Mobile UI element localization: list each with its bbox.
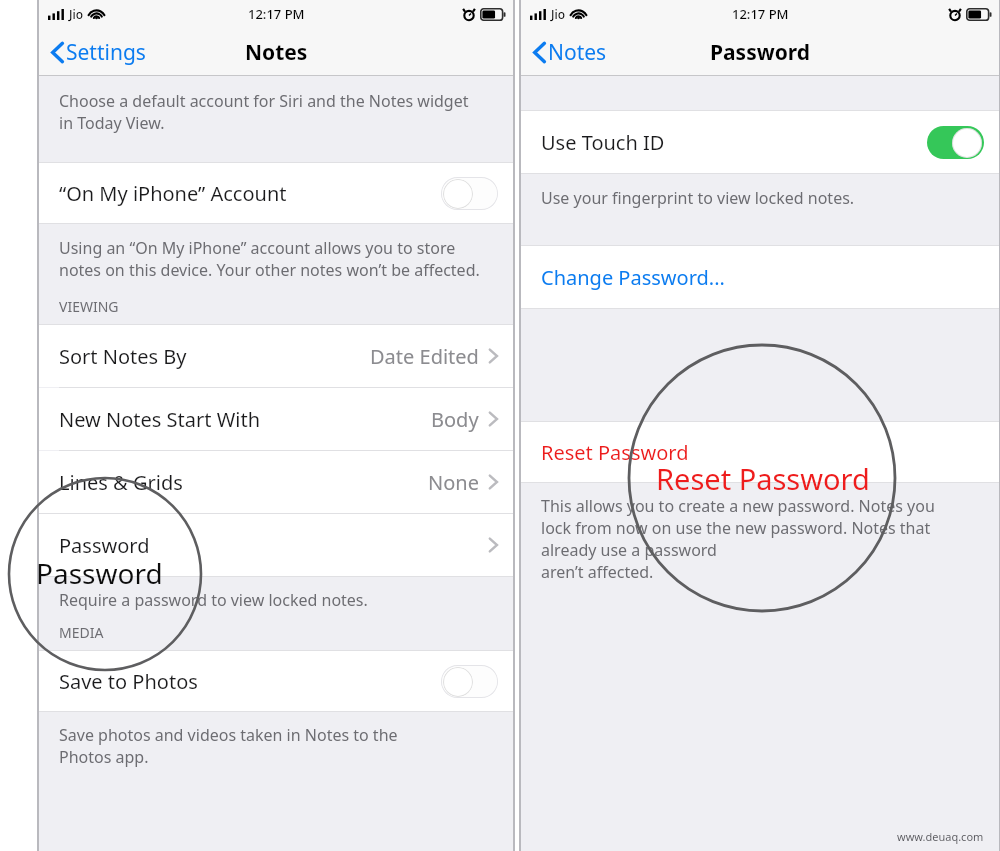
staticText: New Notes Start With <box>59 406 261 433</box>
staticText: Password <box>59 532 150 559</box>
staticText: Jio <box>551 6 566 22</box>
staticText: www.deuaq.com <box>897 829 984 844</box>
staticText: Use Touch ID <box>541 129 665 156</box>
staticText: Sort Notes By <box>59 343 187 370</box>
button[interactable]: “On My iPhone” Account <box>39 163 513 223</box>
button[interactable]: Use Touch ID <box>521 111 999 173</box>
staticText: Using an “On My iPhone” account allows y… <box>59 237 480 281</box>
button[interactable]: Notes <box>529 33 611 72</box>
button[interactable]: Lines & Grids <box>39 451 513 513</box>
staticText: Save photos and videos taken in Notes to… <box>59 724 398 768</box>
staticText: Body <box>431 406 479 433</box>
staticText: Require a password to view locked notes. <box>59 589 368 611</box>
staticText: This allows you to create a new password… <box>541 495 979 583</box>
staticText: VIEWING <box>59 297 119 316</box>
button[interactable]: Switch off <box>441 177 498 210</box>
staticText: None <box>428 469 479 496</box>
staticText: Jio <box>69 6 84 22</box>
staticText: 12:17 PM <box>732 5 789 23</box>
staticText: Change Password... <box>541 264 725 291</box>
button[interactable]: Sort Notes By <box>39 325 513 387</box>
staticText: Lines & Grids <box>59 469 183 496</box>
staticText: 12:17 PM <box>248 5 305 23</box>
staticText: Password <box>710 38 811 67</box>
button[interactable]: Settings <box>47 33 150 72</box>
staticText: Save to Photos <box>59 668 198 695</box>
button[interactable]: Switch on <box>927 126 984 159</box>
staticText: Settings <box>66 38 146 67</box>
staticText: “On My iPhone” Account <box>59 180 287 207</box>
button[interactable]: Change Password... <box>521 246 999 308</box>
staticText: MEDIA <box>59 623 104 642</box>
staticText: Reset Password <box>656 459 870 498</box>
staticText: Date Edited <box>370 343 479 370</box>
button[interactable]: New Notes Start With <box>39 388 513 450</box>
button[interactable]: Reset Password <box>521 422 999 482</box>
staticText: Notes <box>548 38 607 67</box>
button[interactable]: Save to Photos <box>39 651 513 711</box>
staticText: Use your fingerprint to view locked note… <box>541 187 855 209</box>
staticText: Choose a default account for Siri and th… <box>59 90 469 134</box>
button[interactable]: Password <box>39 514 513 576</box>
staticText: Notes <box>245 38 308 67</box>
button[interactable]: Switch off <box>441 665 498 698</box>
staticText: Password <box>36 554 163 592</box>
staticText: Reset Password <box>541 439 689 466</box>
